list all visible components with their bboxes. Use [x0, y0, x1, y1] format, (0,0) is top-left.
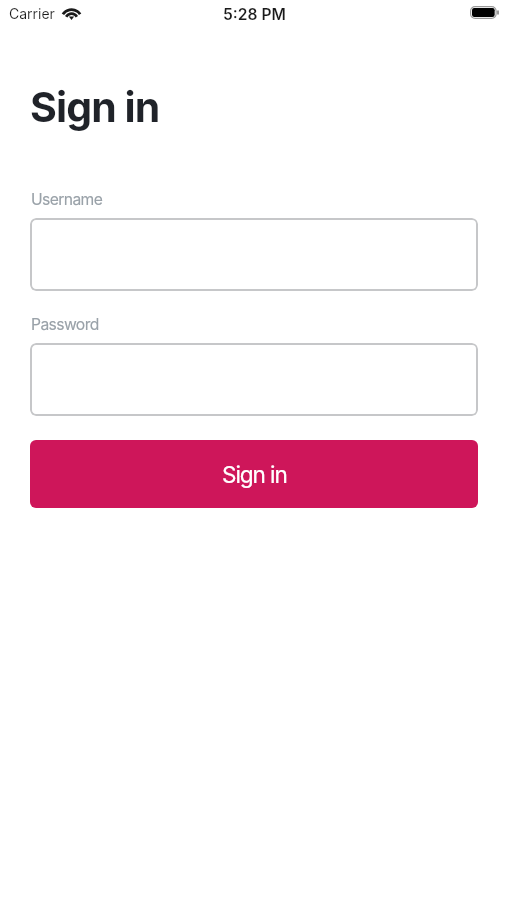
staticText: 5:28 PM — [223, 5, 286, 24]
staticText: Carrier — [9, 5, 55, 22]
button[interactable]: Username input field — [30, 218, 478, 291]
staticText: Password — [31, 315, 99, 334]
staticText: Sign in — [222, 461, 287, 488]
other: Wi-Fi signal — [61, 5, 82, 20]
staticText: Sign in — [30, 82, 160, 132]
button[interactable]: Sign in — [30, 440, 478, 508]
other: Battery full — [470, 6, 499, 19]
staticText: Username — [31, 190, 103, 209]
button[interactable]: Password input field — [30, 343, 478, 416]
